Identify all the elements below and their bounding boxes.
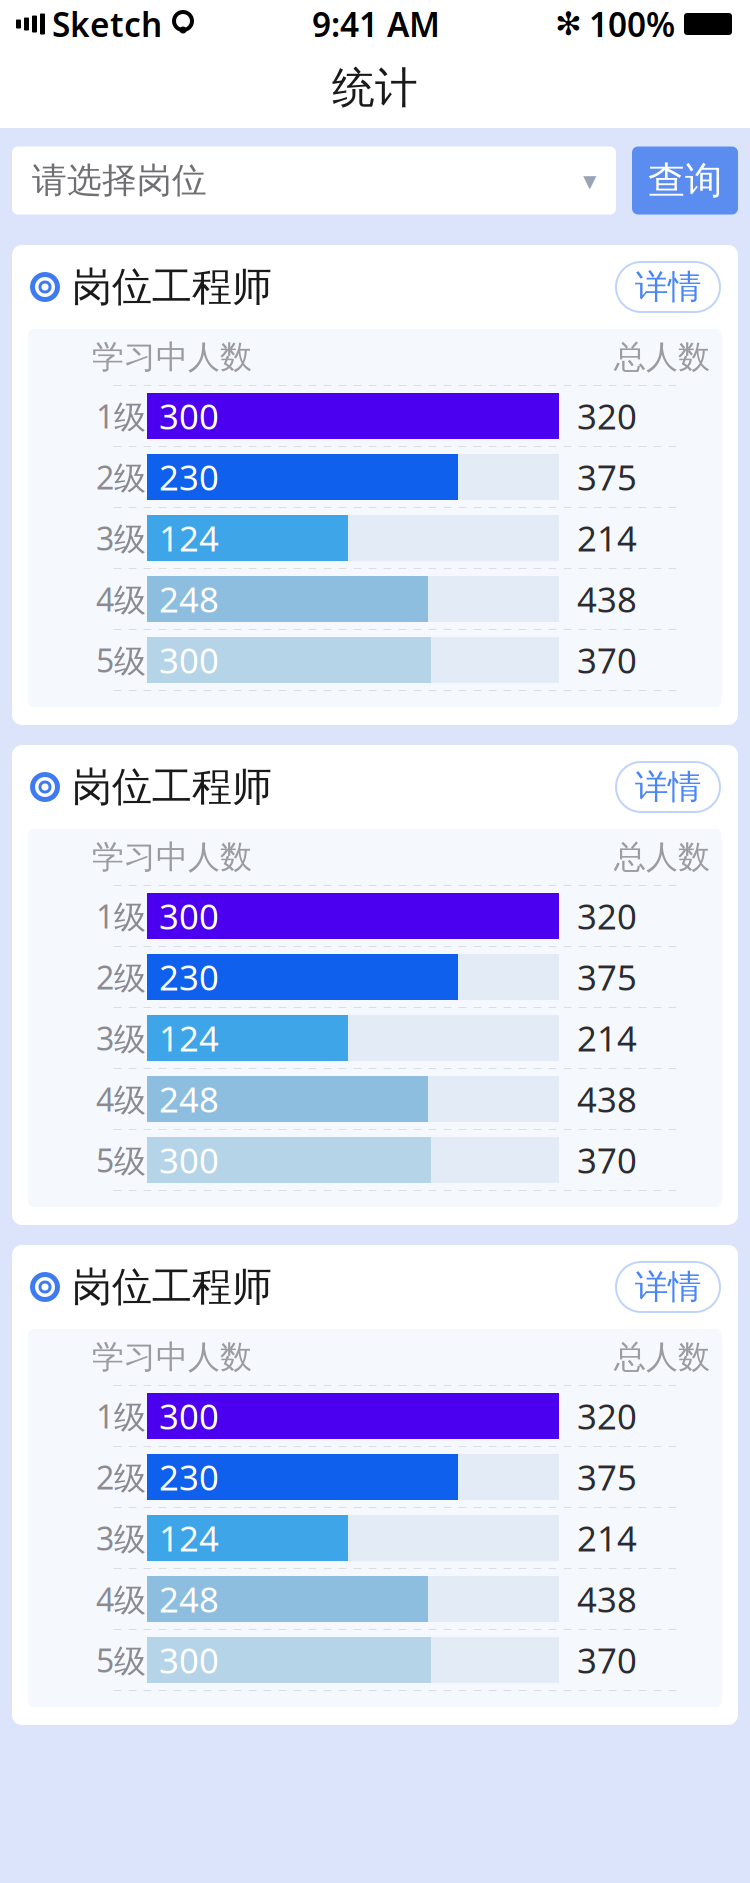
staticText: 请选择岗位: [32, 159, 207, 202]
staticText: 9:41 AM: [312, 2, 440, 46]
staticText: 总人数: [614, 1337, 710, 1377]
staticText: 300: [159, 637, 219, 683]
staticText: 4级: [96, 578, 146, 620]
staticText: 375: [577, 1454, 637, 1500]
staticText: 230: [159, 454, 219, 500]
staticText: 300: [159, 1393, 219, 1439]
staticText: 300: [159, 893, 219, 939]
staticText: 300: [159, 1137, 219, 1183]
staticText: 2级: [96, 456, 146, 498]
staticText: 总人数: [614, 837, 710, 877]
button[interactable]: 详情: [616, 1262, 720, 1312]
staticText: 2级: [96, 956, 146, 998]
staticText: 320: [577, 393, 637, 439]
staticText: ▾: [583, 165, 596, 196]
staticText: 1级: [96, 1395, 146, 1437]
staticText: 248: [159, 1576, 219, 1622]
staticText: 学习中人数: [92, 837, 252, 877]
button[interactable]: 查询: [632, 146, 738, 214]
staticText: 320: [577, 1393, 637, 1439]
staticText: 320: [577, 893, 637, 939]
staticText: 300: [159, 393, 219, 439]
staticText: 438: [577, 1576, 637, 1622]
staticText: 岗位工程师: [72, 762, 272, 811]
staticText: 438: [577, 576, 637, 622]
staticText: 248: [159, 1076, 219, 1122]
staticText: 1级: [96, 895, 146, 937]
button[interactable]: 请选择岗位: [12, 146, 616, 214]
staticText: 5级: [96, 1639, 146, 1681]
staticText: 详情: [635, 766, 701, 807]
button[interactable]: 详情: [616, 262, 720, 312]
staticText: 124: [159, 515, 219, 561]
staticText: 4级: [96, 1078, 146, 1120]
staticText: 岗位工程师: [72, 262, 272, 311]
staticText: 查询: [648, 158, 722, 203]
staticText: 学习中人数: [92, 337, 252, 377]
staticText: Sketch: [52, 2, 162, 46]
staticText: 岗位工程师: [72, 1262, 272, 1311]
staticText: 124: [159, 1515, 219, 1561]
staticText: 3级: [96, 517, 146, 559]
staticText: 100%: [589, 2, 675, 46]
staticText: 214: [577, 1015, 637, 1061]
staticText: 214: [577, 515, 637, 561]
staticText: 统计: [332, 62, 418, 114]
staticText: 1级: [96, 395, 146, 437]
staticText: 230: [159, 1454, 219, 1500]
staticText: 370: [577, 1137, 637, 1183]
staticText: 214: [577, 1515, 637, 1561]
staticText: 2级: [96, 1456, 146, 1498]
staticText: 学习中人数: [92, 1337, 252, 1377]
staticText: 248: [159, 576, 219, 622]
staticText: 5级: [96, 1139, 146, 1181]
staticText: 375: [577, 454, 637, 500]
staticText: 详情: [635, 1266, 701, 1307]
staticText: 3级: [96, 1517, 146, 1559]
staticText: ✻: [555, 6, 582, 42]
staticText: 详情: [635, 266, 701, 307]
staticText: 300: [159, 1637, 219, 1683]
staticText: 370: [577, 1637, 637, 1683]
staticText: 124: [159, 1015, 219, 1061]
staticText: 5级: [96, 639, 146, 681]
staticText: 总人数: [614, 337, 710, 377]
staticText: 4级: [96, 1578, 146, 1620]
staticText: 375: [577, 954, 637, 1000]
staticText: 230: [159, 954, 219, 1000]
staticText: 370: [577, 637, 637, 683]
staticText: 3级: [96, 1017, 146, 1059]
staticText: 438: [577, 1076, 637, 1122]
button[interactable]: 详情: [616, 762, 720, 812]
